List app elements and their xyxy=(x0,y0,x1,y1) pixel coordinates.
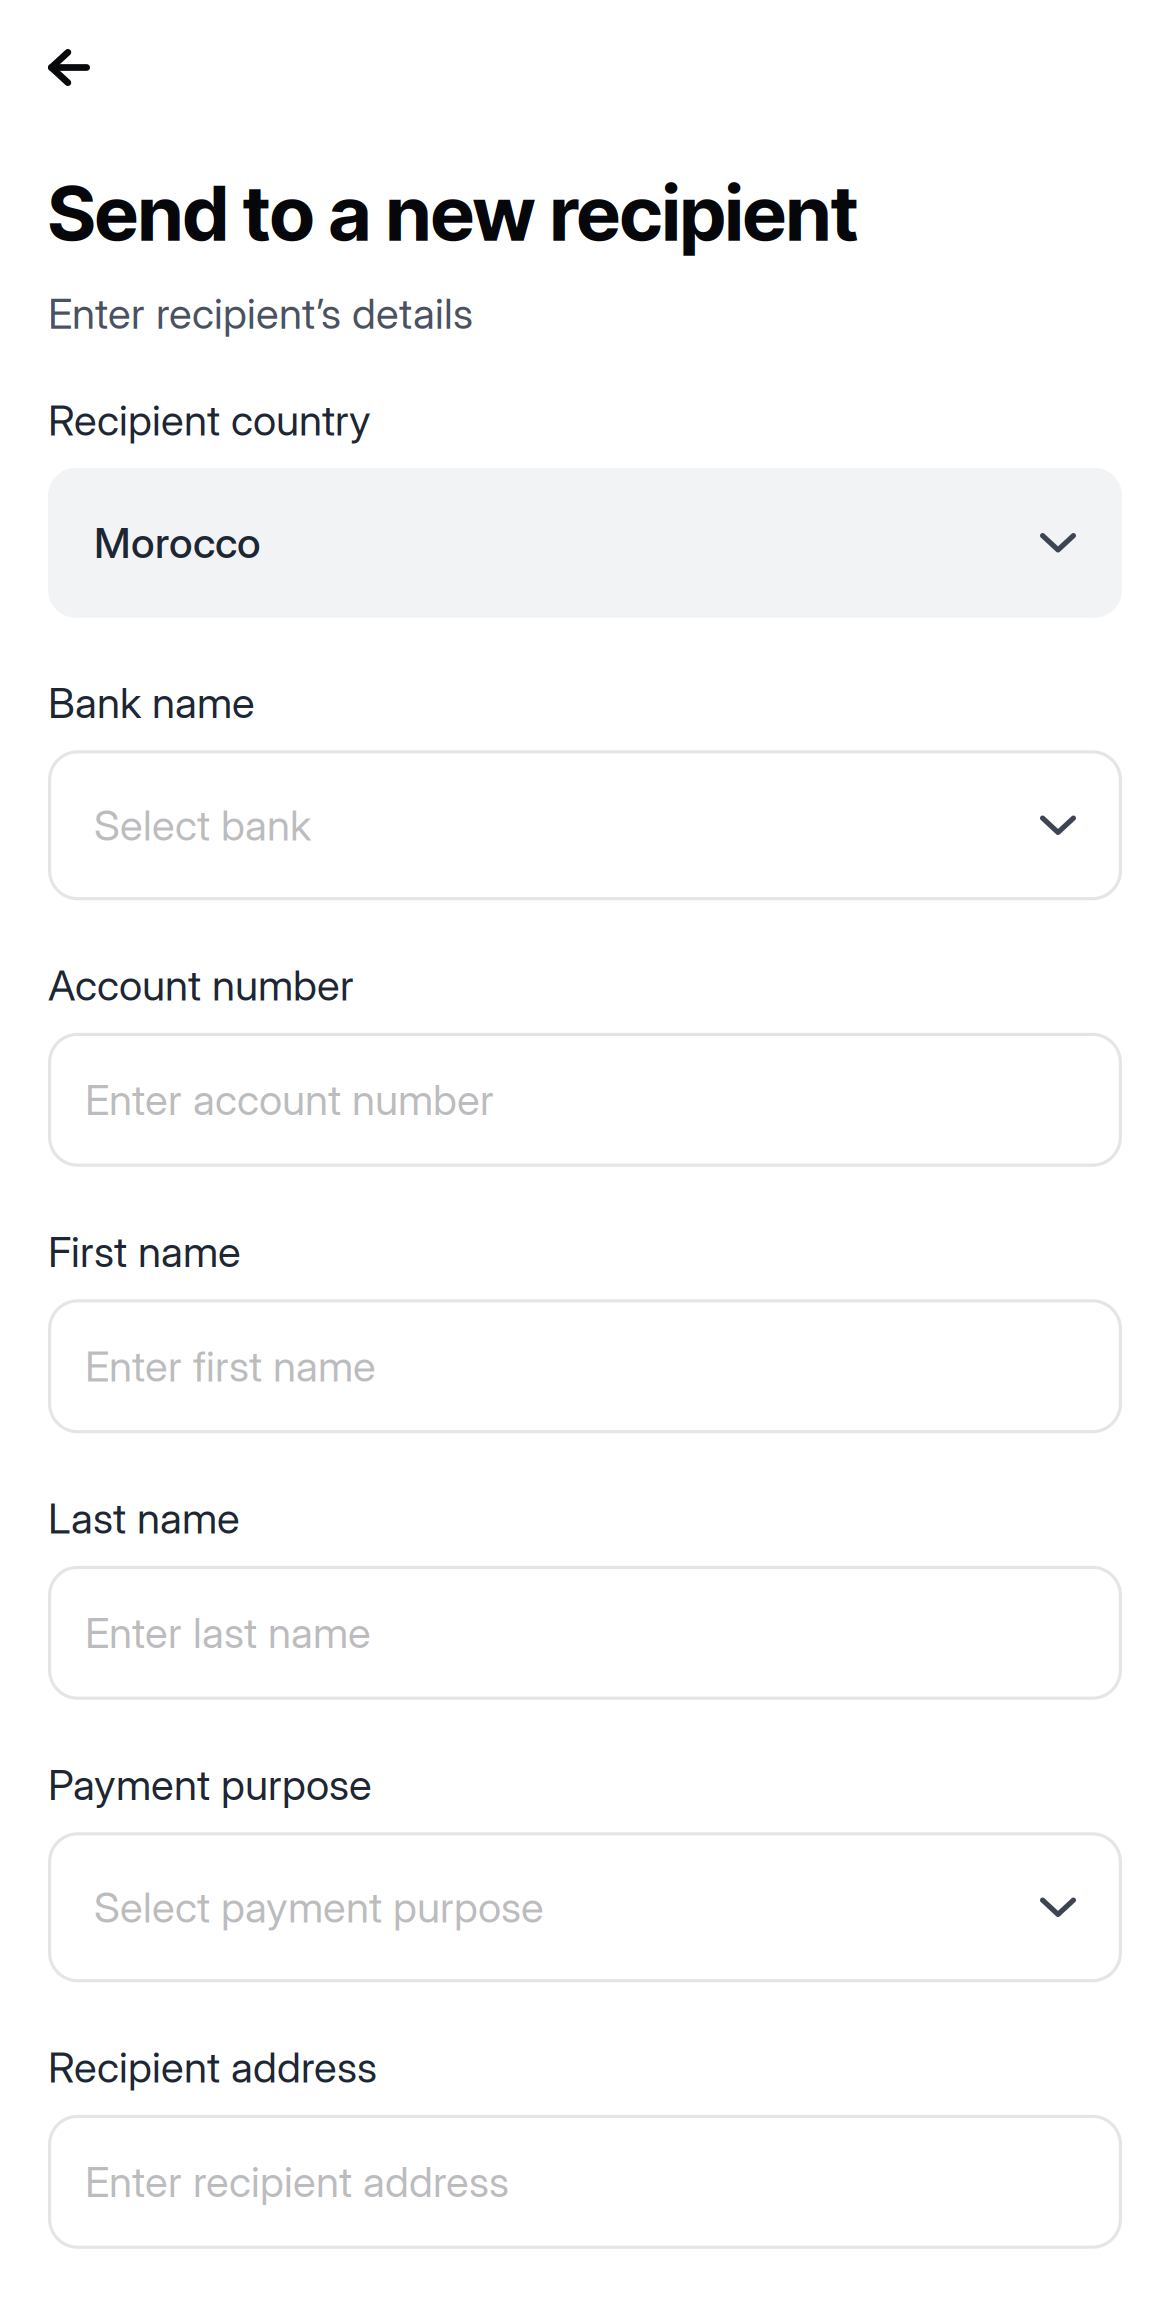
staticText: Bank name xyxy=(48,677,255,728)
button[interactable]: Morocco xyxy=(48,468,1122,618)
staticText: Recipient address xyxy=(48,2042,377,2093)
staticText: Enter recipient’s details xyxy=(48,288,473,339)
button[interactable]: Back xyxy=(0,0,126,122)
staticText: Enter first name xyxy=(85,1341,376,1392)
button[interactable]: Select bank xyxy=(48,750,1122,900)
staticText: Account number xyxy=(48,960,354,1011)
staticText: Recipient country xyxy=(48,395,371,446)
staticText: First name xyxy=(48,1226,241,1277)
staticText: Payment purpose xyxy=(48,1759,372,1810)
staticText: Last name xyxy=(48,1493,240,1544)
staticText: Enter last name xyxy=(85,1607,371,1658)
staticText: Select payment purpose xyxy=(94,1882,544,1933)
staticText: Send to a new recipient xyxy=(48,167,858,259)
staticText: Morocco xyxy=(94,517,261,568)
button[interactable]: Enter first name xyxy=(48,1299,1122,1433)
staticText: Select bank xyxy=(94,800,311,851)
button[interactable]: Enter account number xyxy=(48,1033,1122,1167)
button[interactable]: Enter recipient address xyxy=(48,2115,1122,2249)
button[interactable]: Select payment purpose xyxy=(48,1832,1122,1982)
staticText: Enter recipient address xyxy=(85,2156,509,2207)
button[interactable]: Enter last name xyxy=(48,1566,1122,1700)
staticText: Enter account number xyxy=(85,1074,494,1125)
